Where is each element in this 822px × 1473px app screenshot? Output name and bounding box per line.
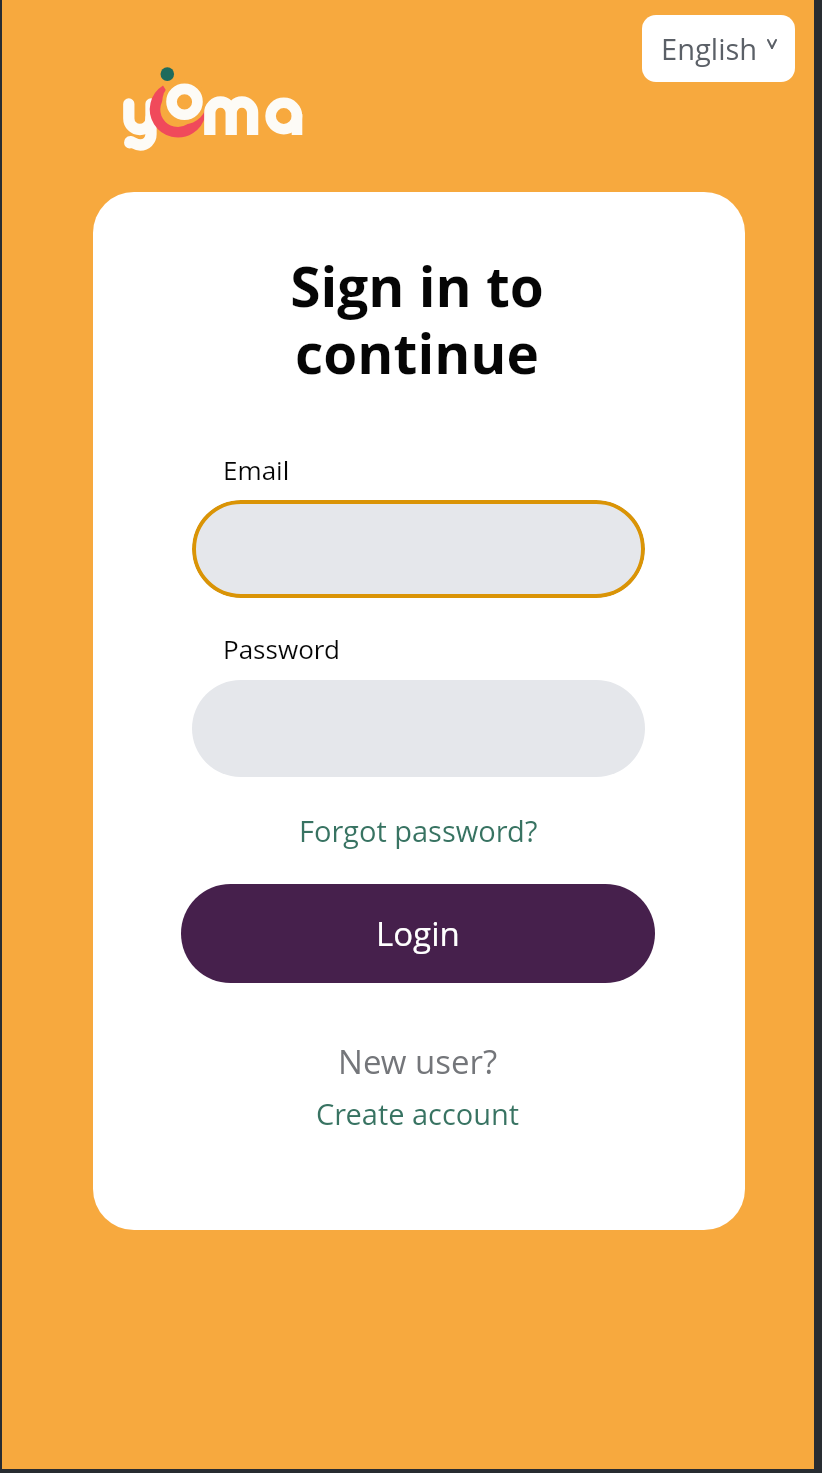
button[interactable]: Create account bbox=[316, 1094, 520, 1133]
staticText: Forgot password? bbox=[299, 811, 538, 850]
button[interactable]: Login bbox=[181, 884, 655, 983]
button[interactable]: Password input bbox=[192, 680, 645, 777]
button[interactable]: Email input bbox=[192, 500, 645, 598]
staticText: Email bbox=[223, 452, 290, 487]
staticText: Create account bbox=[316, 1094, 520, 1133]
staticText: Password bbox=[223, 631, 340, 666]
staticText: New user? bbox=[338, 1039, 498, 1084]
button[interactable]: Forgot password? bbox=[299, 811, 538, 850]
staticText: Sign in to continue bbox=[267, 248, 567, 390]
button[interactable]: Select language bbox=[642, 15, 795, 82]
staticText: English bbox=[661, 29, 758, 68]
staticText: Login bbox=[376, 911, 460, 956]
